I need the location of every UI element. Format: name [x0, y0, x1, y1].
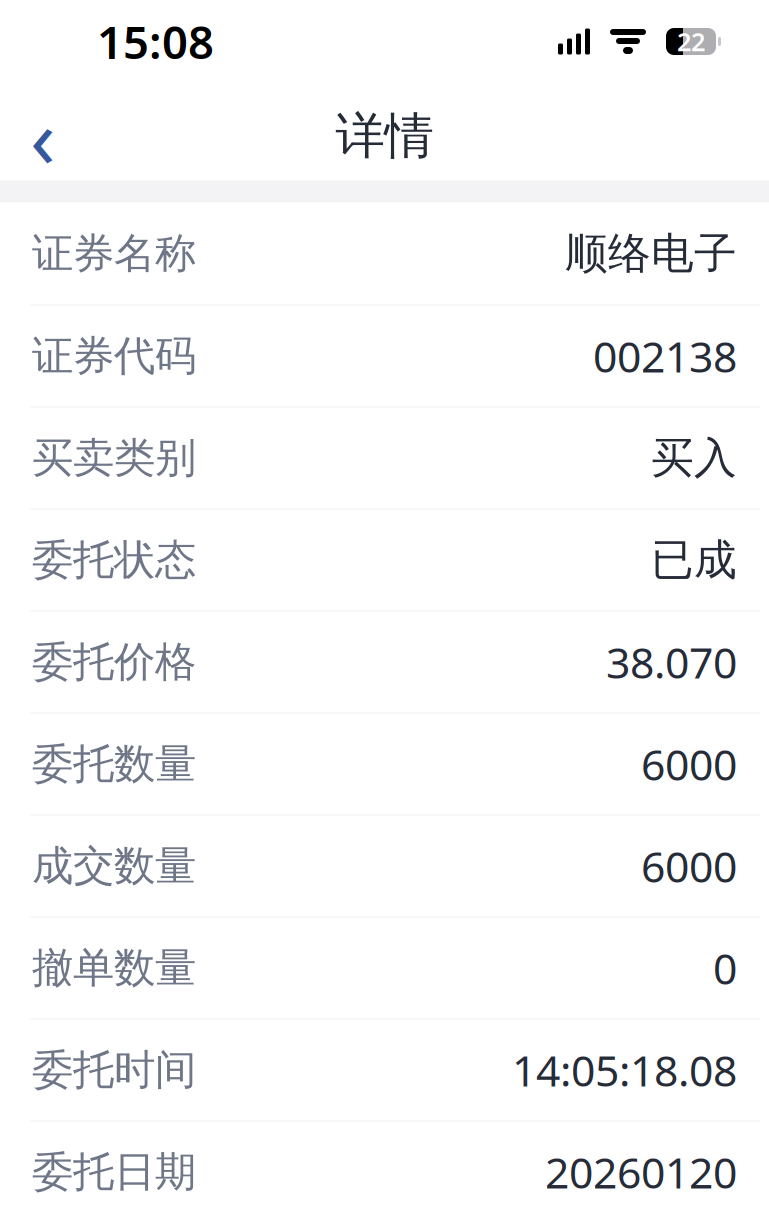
- staticText: 委托状态: [32, 535, 196, 585]
- staticText: 委托日期: [32, 1147, 196, 1197]
- staticText: 买入: [651, 432, 737, 484]
- staticText: 委托时间: [32, 1045, 196, 1095]
- staticText: 证券代码: [32, 331, 196, 381]
- staticText: 委托价格: [32, 637, 196, 687]
- staticText: 买卖类别: [32, 433, 196, 483]
- staticText: 20260120: [545, 1144, 737, 1200]
- staticText: 已成: [651, 534, 737, 586]
- staticText: 002138: [593, 328, 737, 384]
- staticText: 0: [713, 940, 737, 996]
- staticText: 6000: [641, 838, 737, 894]
- staticText: 撤单数量: [32, 943, 196, 993]
- staticText: 证券名称: [32, 228, 196, 279]
- staticText: 14:05:18.08: [512, 1042, 737, 1098]
- staticText: ‹: [30, 81, 56, 191]
- staticText: 38.070: [606, 634, 737, 690]
- staticText: 委托数量: [32, 739, 196, 789]
- staticText: 15:08: [97, 11, 214, 72]
- staticText: 成交数量: [32, 841, 196, 891]
- button[interactable]: 返回: [0, 93, 86, 179]
- staticText: 详情: [335, 106, 433, 166]
- staticText: 6000: [641, 736, 737, 792]
- staticText: 22: [677, 25, 705, 58]
- staticText: 顺络电子: [565, 227, 737, 280]
